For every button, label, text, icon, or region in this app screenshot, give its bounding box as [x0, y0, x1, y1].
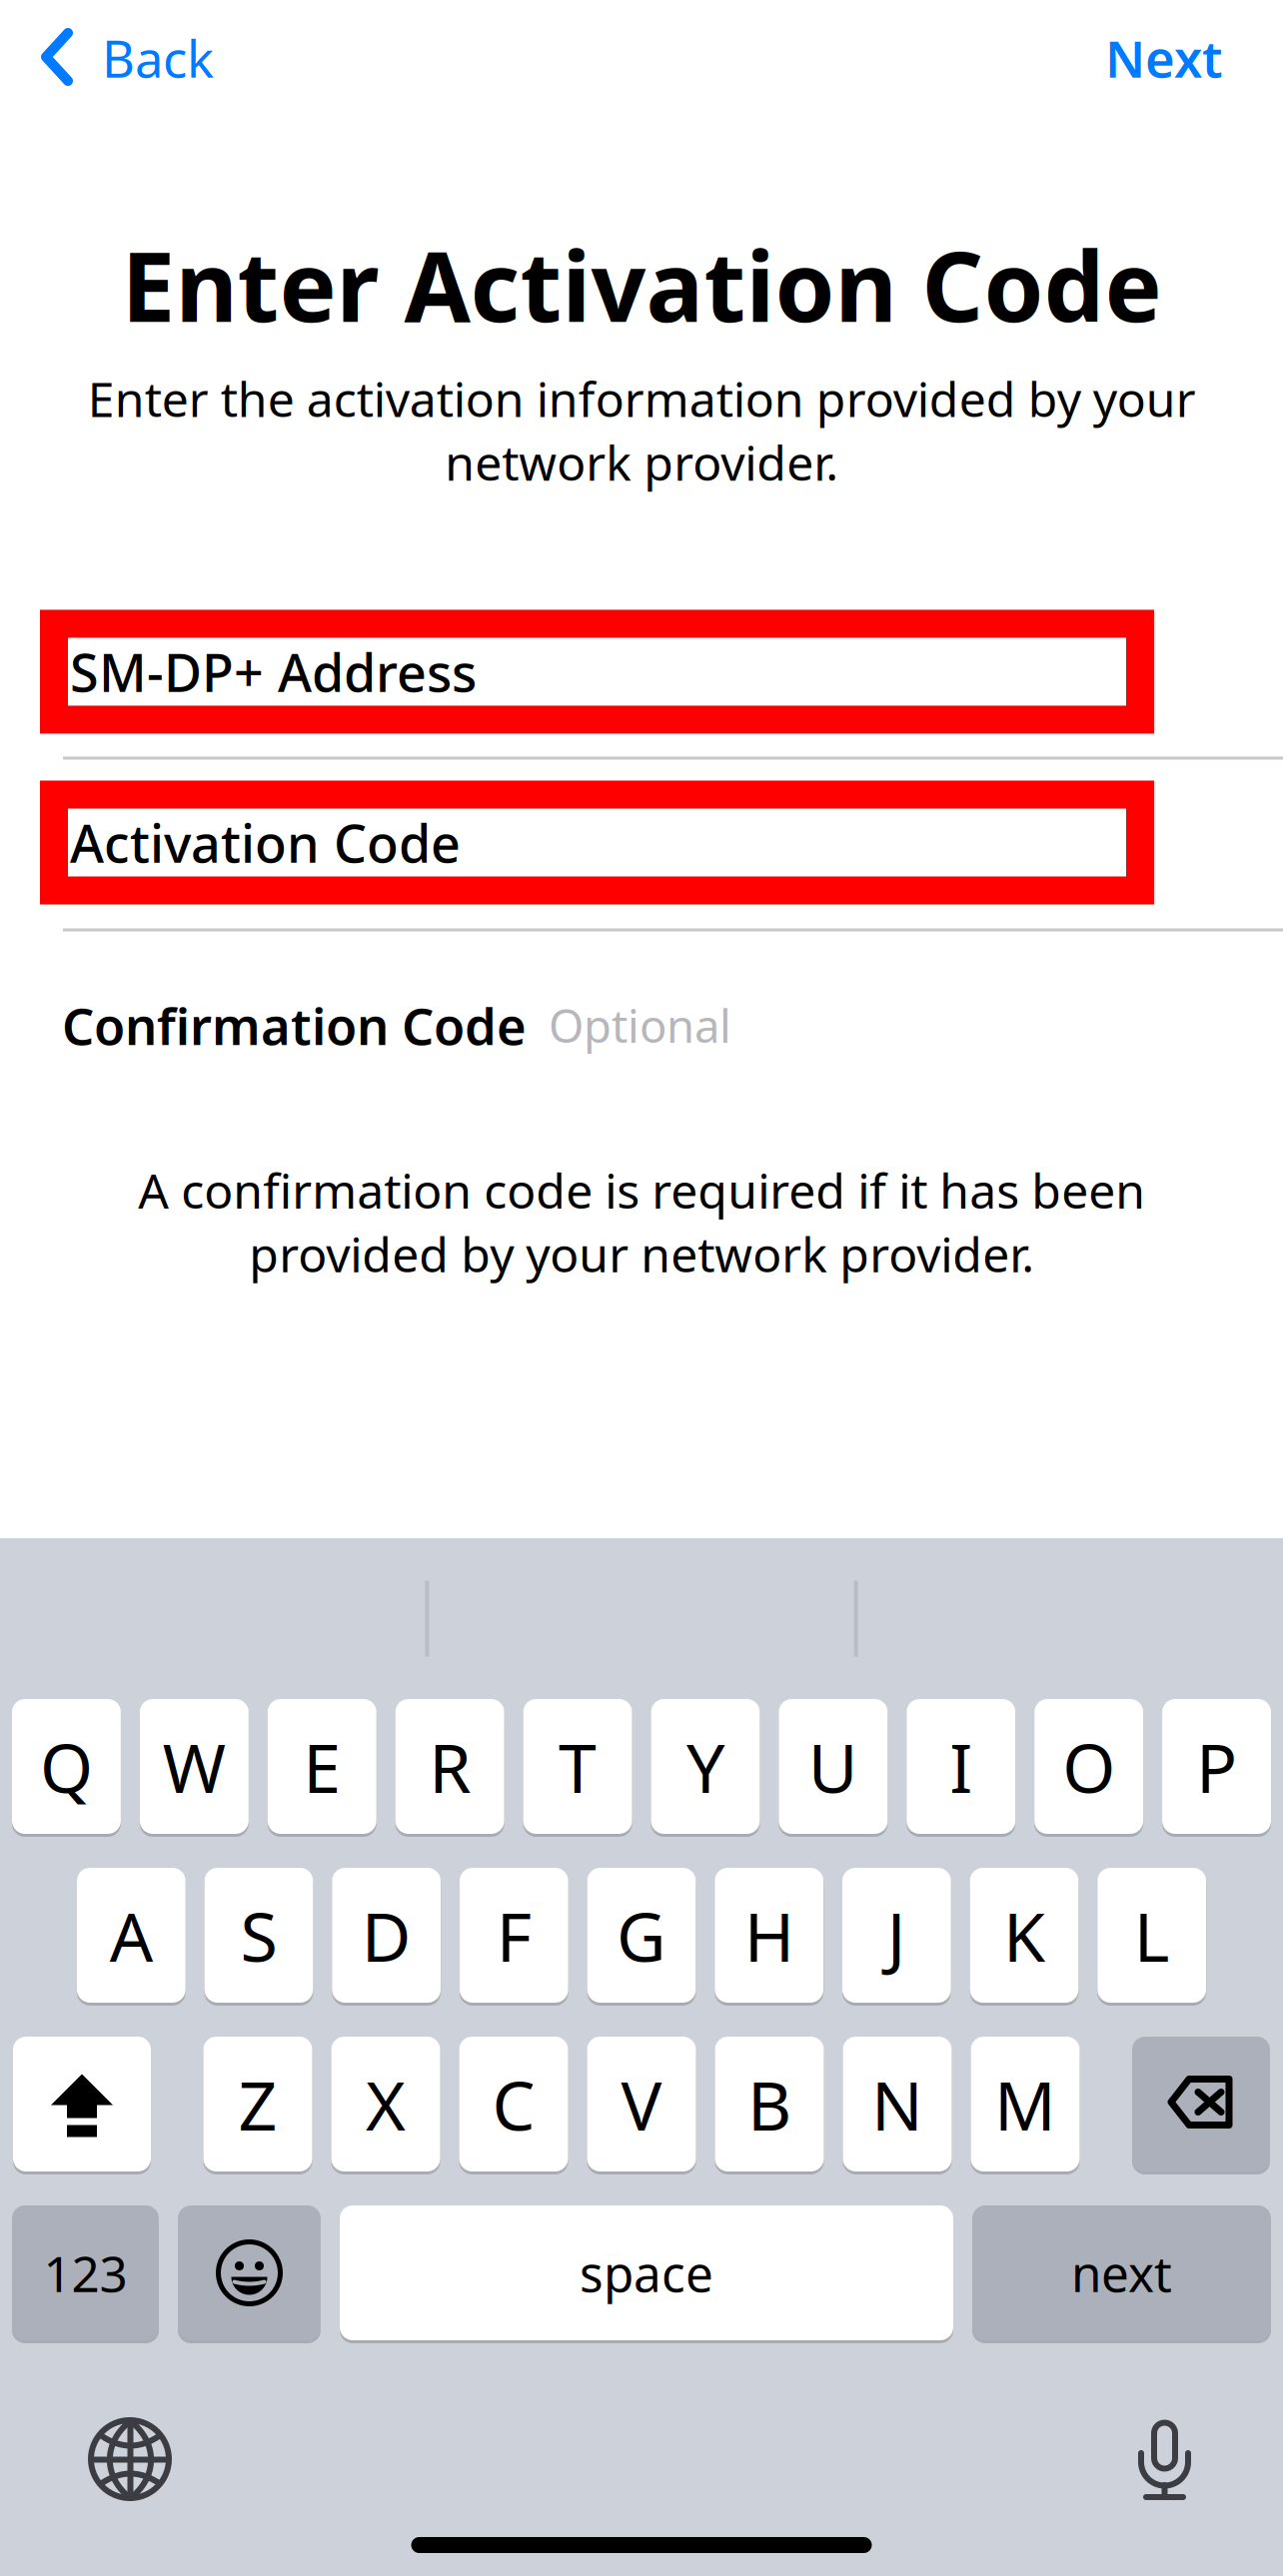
- staticText: E: [303, 1721, 341, 1811]
- button[interactable]: U: [779, 1699, 888, 1834]
- button[interactable]: P: [1162, 1699, 1271, 1834]
- button[interactable]: Y: [651, 1699, 760, 1834]
- staticText: U: [808, 1721, 858, 1811]
- staticText: SM-DP+ Address: [70, 637, 477, 706]
- button[interactable]: 123: [12, 2205, 159, 2340]
- staticText: V: [621, 2059, 662, 2149]
- staticText: Q: [40, 1721, 93, 1811]
- button[interactable]: Back: [0, 14, 214, 102]
- staticText: L: [1134, 1890, 1170, 1980]
- button[interactable]: D: [332, 1868, 441, 2003]
- button[interactable]: R: [395, 1699, 504, 1834]
- staticText: Activation Code: [70, 808, 461, 877]
- button[interactable]: Confirmation Code: [0, 931, 1283, 1084]
- button[interactable]: Shift: [13, 2037, 151, 2171]
- staticText: A: [110, 1890, 153, 1980]
- button[interactable]: E: [268, 1699, 376, 1834]
- button[interactable]: I: [907, 1699, 1015, 1834]
- staticText: Optional: [549, 995, 731, 1055]
- staticText: G: [617, 1890, 666, 1980]
- button[interactable]: space: [340, 2205, 953, 2340]
- staticText: Enter the activation information provide…: [87, 367, 1196, 494]
- button[interactable]: C: [459, 2037, 568, 2171]
- button[interactable]: A: [77, 1868, 186, 2003]
- button[interactable]: Activation Code: [54, 795, 1140, 890]
- button[interactable]: Z: [203, 2037, 312, 2171]
- staticText: H: [744, 1890, 794, 1980]
- staticText: X: [366, 2059, 406, 2149]
- staticText: M: [994, 2059, 1056, 2149]
- staticText: S: [240, 1890, 277, 1980]
- staticText: Z: [238, 2059, 277, 2149]
- staticText: B: [747, 2059, 791, 2149]
- button[interactable]: B: [715, 2037, 824, 2171]
- staticText: Y: [686, 1721, 724, 1811]
- staticText: F: [496, 1890, 531, 1980]
- staticText: N: [871, 2059, 923, 2149]
- staticText: D: [361, 1890, 411, 1980]
- button[interactable]: Change keyboard: [71, 2400, 189, 2518]
- staticText: Back: [102, 24, 214, 92]
- staticText: I: [950, 1721, 973, 1811]
- button[interactable]: M: [971, 2037, 1080, 2171]
- button[interactable]: Next: [1105, 14, 1283, 102]
- staticText: space: [580, 2240, 713, 2306]
- staticText: C: [492, 2059, 535, 2149]
- button[interactable]: Emoji: [178, 2205, 321, 2340]
- staticText: R: [429, 1721, 471, 1811]
- staticText: Enter Activation Code: [121, 221, 1162, 348]
- button[interactable]: F: [460, 1868, 568, 2003]
- button[interactable]: O: [1034, 1699, 1143, 1834]
- staticText: Confirmation Code: [62, 992, 527, 1059]
- button[interactable]: Dictation: [1117, 2397, 1212, 2521]
- button[interactable]: X: [331, 2037, 440, 2171]
- button[interactable]: G: [587, 1868, 696, 2003]
- staticText: O: [1062, 1721, 1115, 1811]
- button[interactable]: Delete: [1132, 2037, 1270, 2171]
- staticText: A confirmation code is required if it ha…: [138, 1158, 1145, 1286]
- button[interactable]: N: [843, 2037, 952, 2171]
- button[interactable]: L: [1097, 1868, 1206, 2003]
- button[interactable]: Q: [12, 1699, 121, 1834]
- button[interactable]: H: [715, 1868, 823, 2003]
- button[interactable]: T: [523, 1699, 632, 1834]
- button[interactable]: W: [140, 1699, 249, 1834]
- staticText: Next: [1105, 24, 1223, 92]
- button[interactable]: S: [205, 1868, 313, 2003]
- button[interactable]: K: [970, 1868, 1079, 2003]
- staticText: J: [887, 1890, 906, 1980]
- staticText: T: [559, 1721, 597, 1811]
- staticText: next: [1071, 2240, 1172, 2306]
- button[interactable]: V: [587, 2037, 696, 2171]
- staticText: P: [1196, 1721, 1237, 1811]
- staticText: 123: [43, 2240, 127, 2306]
- button[interactable]: next: [972, 2205, 1271, 2340]
- button[interactable]: J: [842, 1868, 951, 2003]
- staticText: K: [1003, 1890, 1045, 1980]
- button[interactable]: SM-DP+ Address: [54, 624, 1140, 720]
- staticText: W: [163, 1721, 226, 1811]
